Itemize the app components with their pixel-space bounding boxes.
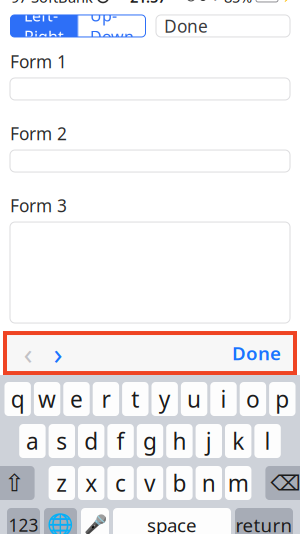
staticText: o bbox=[246, 384, 260, 414]
button[interactable]: g bbox=[137, 424, 163, 458]
staticText: return bbox=[235, 513, 292, 534]
button[interactable]: return bbox=[235, 508, 293, 534]
staticText: -97 SoftBank bbox=[6, 0, 93, 7]
staticText: v bbox=[144, 468, 156, 498]
staticText: n bbox=[202, 468, 216, 498]
button[interactable]: v bbox=[137, 466, 163, 500]
staticText: space bbox=[147, 513, 197, 534]
button[interactable]: p bbox=[269, 382, 295, 416]
button[interactable]: m bbox=[225, 466, 251, 500]
staticText: j bbox=[206, 426, 212, 456]
staticText: p bbox=[275, 384, 289, 414]
button[interactable]: s bbox=[49, 424, 75, 458]
button[interactable]: Dictation bbox=[81, 508, 109, 534]
staticText: Left-Right bbox=[24, 5, 64, 47]
staticText: ⇧ bbox=[5, 469, 25, 497]
staticText: k bbox=[232, 426, 244, 456]
button[interactable]: space bbox=[113, 508, 231, 534]
staticText: i bbox=[220, 384, 226, 414]
button[interactable]: w bbox=[34, 382, 60, 416]
staticText: ‹ bbox=[23, 333, 32, 372]
staticText: t bbox=[131, 384, 139, 414]
button[interactable]: h bbox=[166, 424, 193, 458]
button[interactable]: n bbox=[196, 466, 222, 500]
button[interactable]: t bbox=[122, 382, 148, 416]
staticText: ✱ bbox=[211, 0, 220, 3]
staticText: Form 2 bbox=[10, 122, 67, 145]
button[interactable]: Next field bbox=[43, 337, 73, 369]
staticText: Done bbox=[232, 341, 281, 365]
button[interactable]: o bbox=[240, 382, 266, 416]
button[interactable]: b bbox=[166, 466, 193, 500]
staticText: a bbox=[26, 426, 39, 456]
staticText: 123 bbox=[8, 513, 38, 534]
staticText: › bbox=[53, 333, 62, 372]
staticText: d bbox=[84, 426, 98, 456]
staticText: 🌐 bbox=[47, 513, 74, 534]
button[interactable]: Up-Down bbox=[78, 15, 145, 37]
staticText: u bbox=[187, 384, 201, 414]
button[interactable]: i bbox=[210, 382, 237, 416]
button[interactable]: c bbox=[107, 466, 134, 500]
staticText: ⚡ bbox=[282, 0, 294, 2]
staticText: b bbox=[172, 468, 186, 498]
staticText: q bbox=[11, 384, 25, 414]
button[interactable]: a bbox=[19, 424, 46, 458]
staticText: w bbox=[38, 384, 56, 414]
button[interactable]: f bbox=[107, 424, 134, 458]
button[interactable]: y bbox=[151, 382, 178, 416]
staticText: Done bbox=[164, 14, 208, 37]
button[interactable]: e bbox=[63, 382, 90, 416]
button[interactable]: d bbox=[78, 424, 104, 458]
button[interactable]: l bbox=[254, 424, 281, 458]
button[interactable]: Previous field bbox=[13, 337, 43, 369]
staticText: ⌫ bbox=[270, 471, 300, 495]
button[interactable]: Shift bbox=[0, 466, 35, 500]
button[interactable]: Delete bbox=[265, 466, 300, 500]
button[interactable]: r bbox=[93, 382, 119, 416]
staticText: l bbox=[265, 426, 271, 456]
staticText: Up-Down bbox=[90, 5, 134, 47]
staticText: 🎤 bbox=[83, 514, 106, 534]
staticText: g bbox=[143, 426, 157, 456]
staticText: Form 1 bbox=[10, 50, 67, 73]
staticText: Form 3 bbox=[10, 194, 67, 217]
button[interactable]: u bbox=[181, 382, 207, 416]
staticText: y bbox=[159, 384, 171, 414]
staticText: 21:57 bbox=[130, 0, 166, 7]
staticText: r bbox=[101, 384, 110, 414]
staticText: x bbox=[85, 468, 97, 498]
button[interactable]: q bbox=[4, 382, 31, 416]
button[interactable]: Left-Right bbox=[10, 15, 77, 37]
staticText: f bbox=[117, 426, 125, 456]
staticText: s bbox=[56, 426, 67, 456]
button[interactable]: k bbox=[225, 424, 251, 458]
staticText: e bbox=[70, 384, 83, 414]
button[interactable]: x bbox=[78, 466, 104, 500]
button[interactable]: z bbox=[49, 466, 75, 500]
staticText: z bbox=[56, 468, 67, 498]
staticText: 85% bbox=[224, 0, 252, 7]
staticText: h bbox=[172, 426, 186, 456]
button[interactable]: Done bbox=[226, 337, 287, 369]
staticText: c bbox=[115, 468, 126, 498]
button[interactable]: Next keyboard bbox=[44, 508, 77, 534]
staticText: m bbox=[228, 468, 249, 498]
button[interactable]: 123 bbox=[7, 508, 40, 534]
button[interactable]: j bbox=[196, 424, 222, 458]
